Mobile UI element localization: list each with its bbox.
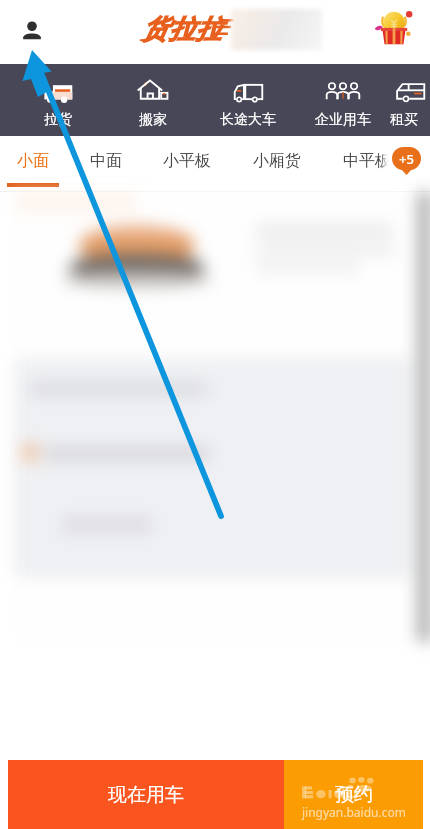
button[interactable]: 搬家: [105, 64, 200, 136]
staticText: jingyan.baidu.com: [302, 804, 406, 820]
button[interactable]: 小厢货: [249, 136, 305, 186]
button[interactable]: Rewards: [370, 3, 418, 51]
button[interactable]: 企业用车: [295, 64, 390, 136]
button[interactable]: 小面: [13, 136, 53, 186]
button[interactable]: 长途大车: [200, 64, 295, 136]
staticText: +5: [399, 150, 414, 168]
staticText: 长途大车: [220, 111, 276, 129]
button[interactable]: 拉货: [10, 64, 105, 136]
button[interactable]: Profile: [12, 12, 52, 52]
staticText: 预约: [335, 783, 373, 807]
staticText: 搬家: [139, 111, 167, 129]
button[interactable]: 中平板: [339, 136, 395, 186]
staticText: 租买车: [390, 111, 430, 129]
staticText: 拉货: [44, 111, 72, 129]
button[interactable]: 租买车: [390, 64, 430, 136]
button[interactable]: +5: [392, 147, 421, 170]
staticText: 中平板: [343, 151, 391, 171]
staticText: 企业用车: [315, 111, 371, 129]
button[interactable]: 预约: [284, 760, 423, 829]
staticText: 小面: [17, 151, 49, 171]
staticText: 中面: [90, 151, 122, 171]
button[interactable]: 小平板: [159, 136, 215, 186]
staticText: 现在用车: [108, 783, 184, 807]
staticText: 货拉拉: [142, 13, 223, 46]
staticText: 小平板: [163, 151, 211, 171]
button[interactable]: 中面: [86, 136, 126, 186]
button[interactable]: 现在用车: [8, 760, 284, 829]
staticText: 小厢货: [253, 151, 301, 171]
